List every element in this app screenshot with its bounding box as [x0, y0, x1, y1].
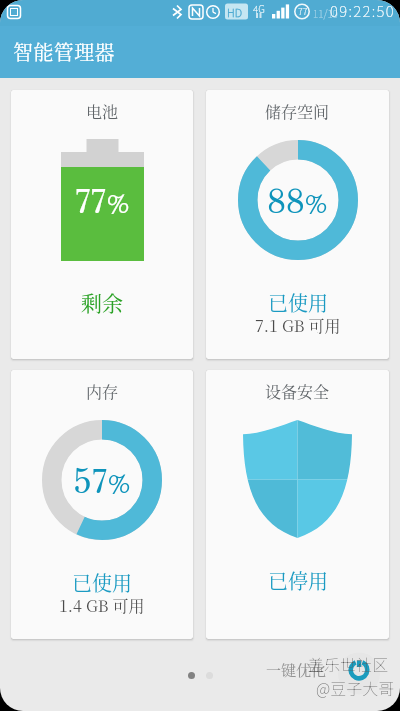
staticText: 4G: [253, 1, 265, 15]
staticText: %: [305, 189, 328, 220]
other: Smart Manager: [0, 26, 400, 78]
staticText: 内存: [86, 380, 119, 403]
staticText: 储存空间: [265, 100, 330, 123]
staticText: 57: [73, 462, 108, 502]
staticText: 09:22:50: [330, 0, 396, 22]
staticText: @豆子大哥: [316, 676, 395, 699]
staticText: 电池: [86, 100, 119, 123]
staticText: 已使用: [72, 568, 132, 597]
button[interactable]: 内存: [11, 370, 193, 639]
staticText: 11/10: [313, 6, 338, 20]
staticText: 设备安全: [265, 380, 330, 403]
button[interactable]: 电池: [11, 90, 193, 359]
staticText: 一键优化: [266, 659, 327, 681]
staticText: 77: [298, 5, 308, 18]
staticText: 剩余: [81, 287, 123, 317]
staticText: 77: [75, 182, 107, 222]
staticText: 已使用: [268, 288, 328, 317]
other: Optimize: [337, 648, 381, 692]
staticText: %: [108, 469, 131, 500]
staticText: 7.1 GB 可用: [255, 314, 341, 337]
staticText: 1.4 GB 可用: [59, 594, 145, 617]
staticText: HD: [227, 4, 242, 20]
staticText: 智能管理器: [13, 37, 115, 66]
staticText: 已停用: [268, 566, 328, 595]
button[interactable]: 储存空间: [206, 90, 389, 359]
button[interactable]: 一键优化: [266, 648, 381, 692]
staticText: %: [107, 189, 130, 220]
button[interactable]: 设备安全: [206, 370, 389, 639]
staticText: 盖乐世社区: [308, 652, 389, 675]
staticText: 88: [267, 182, 305, 222]
